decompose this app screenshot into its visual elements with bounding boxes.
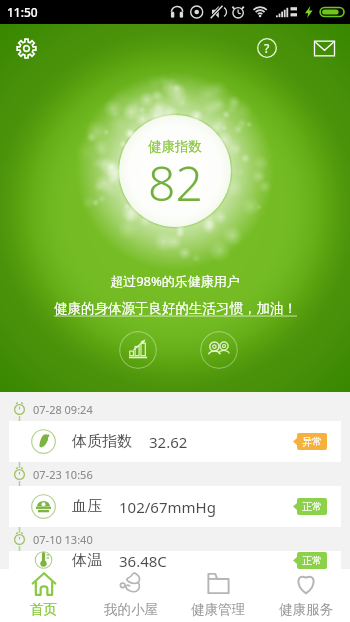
- staticText: 我的小屋: [104, 601, 158, 618]
- button[interactable]: Statistics: [119, 331, 157, 369]
- button[interactable]: Messages: [303, 27, 345, 69]
- staticText: 正常: [302, 500, 322, 513]
- staticText: 首页: [30, 601, 57, 618]
- staticText: ?: [264, 40, 270, 56]
- staticText: 体温: [72, 551, 102, 569]
- staticText: 体质指数: [72, 432, 132, 451]
- staticText: 血压: [72, 497, 102, 516]
- staticText: 超过98%的乐健康用户: [110, 272, 240, 290]
- staticText: 07-28 09:24: [33, 402, 93, 417]
- staticText: 32.62: [149, 432, 188, 452]
- staticText: 102/67mmHg: [119, 497, 216, 517]
- staticText: 07-10 13:40: [33, 532, 93, 547]
- button[interactable]: 健康的身体源于良好的生活习惯，加油！: [54, 300, 297, 317]
- button[interactable]: Settings: [6, 28, 46, 68]
- button[interactable]: 我的小屋: [87, 569, 174, 622]
- staticText: 82: [148, 150, 203, 215]
- staticText: 11:50: [7, 4, 38, 20]
- button[interactable]: 健康管理: [174, 569, 262, 622]
- button[interactable]: Help: [246, 27, 288, 69]
- staticText: 健康指数: [148, 138, 202, 155]
- staticText: 异常: [302, 435, 322, 448]
- button[interactable]: 健康服务: [262, 569, 350, 622]
- staticText: 健康管理: [191, 601, 245, 618]
- button[interactable]: 体质指数: [9, 421, 341, 462]
- staticText: 正常: [302, 554, 322, 567]
- button[interactable]: Friends: [200, 331, 238, 369]
- button[interactable]: 血压: [9, 486, 341, 527]
- button[interactable]: 体温: [9, 551, 341, 569]
- staticText: 36.48C: [119, 551, 167, 569]
- button[interactable]: 首页: [0, 569, 87, 622]
- staticText: 07-23 10:56: [33, 467, 93, 482]
- staticText: 健康服务: [279, 601, 333, 618]
